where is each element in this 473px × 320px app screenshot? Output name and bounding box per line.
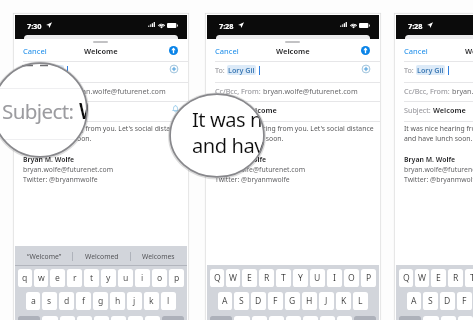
button[interactable]: k [144,292,159,310]
staticText: bryan.wolfe@futurenet.com [71,86,166,96]
button[interactable]: M [337,316,352,320]
button[interactable]: H [302,292,317,310]
staticText: To: [404,65,416,75]
button[interactable]: S [234,292,249,310]
button[interactable]: m [145,316,160,320]
button[interactable]: D [251,292,266,310]
staticText: 7:30 [27,21,42,31]
button[interactable]: v [94,316,109,320]
staticText: S [428,295,433,307]
staticText: a [31,295,36,307]
staticText: A [411,295,417,307]
button[interactable]: p [169,269,184,287]
button[interactable]: C [458,316,473,320]
button[interactable]: U [310,269,325,287]
button[interactable]: “Welcome” [15,246,73,266]
button[interactable]: n [128,316,143,320]
button[interactable]: h [110,292,125,310]
button[interactable]: X [441,316,456,320]
button[interactable]: Shift [18,316,40,320]
button[interactable]: Backspace [162,316,184,320]
button[interactable]: b [111,316,126,320]
button[interactable]: g [93,292,108,310]
button[interactable]: I [327,269,342,287]
button[interactable]: F [457,292,472,310]
button[interactable]: R [448,269,463,287]
button[interactable]: u [118,269,133,287]
button[interactable]: Add recipient [169,64,179,74]
staticText: To: [23,65,35,75]
button[interactable]: q [18,269,32,287]
button[interactable]: x [60,316,75,320]
button[interactable]: j [127,292,142,310]
button[interactable]: Z [234,316,250,320]
button[interactable]: Welcomed [73,246,130,266]
button[interactable]: z [42,316,58,320]
button[interactable]: r [67,269,82,287]
button[interactable]: Notify me [171,104,179,112]
button[interactable]: d [59,292,74,310]
button[interactable]: o [152,269,167,287]
button[interactable]: i [135,269,150,287]
staticText: j [133,295,136,307]
button[interactable]: w [34,269,48,287]
button[interactable]: Send [361,46,370,55]
button[interactable]: s [42,292,57,310]
button[interactable]: A [407,292,421,310]
button[interactable]: S [423,292,438,310]
button[interactable]: c [77,316,92,320]
button[interactable]: A [218,292,232,310]
button[interactable]: C [269,316,284,320]
button[interactable]: Send [169,46,178,55]
staticText: Y [298,272,303,284]
button[interactable]: y [101,269,116,287]
button[interactable]: Y [293,269,308,287]
button[interactable]: E [242,269,257,287]
button[interactable]: F [268,292,283,310]
button[interactable]: Shift [399,316,421,320]
button[interactable]: Backspace [354,316,376,320]
button[interactable]: W [226,269,240,287]
staticText: S [239,295,244,307]
staticText: Welcomed [85,252,119,261]
button[interactable]: L [353,292,368,310]
staticText: q [22,272,28,284]
button[interactable]: Z [423,316,439,320]
button[interactable]: E [431,269,446,287]
button[interactable]: P [361,269,376,287]
button[interactable]: N [320,316,335,320]
button[interactable]: f [76,292,91,310]
button[interactable]: W [415,269,429,287]
button[interactable]: B [303,316,318,320]
button[interactable]: X [252,316,267,320]
button[interactable]: T [465,269,473,287]
button[interactable]: O [344,269,359,287]
button[interactable]: T [276,269,291,287]
button[interactable]: l [161,292,176,310]
button[interactable]: D [440,292,455,310]
staticText: 7:28 [219,21,234,31]
button[interactable]: G [285,292,300,310]
button[interactable]: J [319,292,334,310]
button[interactable]: K [336,292,351,310]
staticText: E [436,272,441,284]
button[interactable]: e [50,269,65,287]
button[interactable]: Cancel [214,45,240,57]
staticText: g [98,295,104,307]
button[interactable]: Q [210,269,224,287]
button[interactable]: Shift [210,316,232,320]
staticText: T [281,272,286,284]
button[interactable]: a [26,292,40,310]
button[interactable]: R [259,269,274,287]
button[interactable]: Cancel [22,45,48,57]
button[interactable]: Add recipient [361,64,371,74]
button[interactable]: t [84,269,99,287]
button[interactable]: Cancel [403,45,429,57]
button[interactable]: V [286,316,301,320]
staticText: W [229,272,237,284]
button[interactable]: Welcomes [130,246,187,266]
button[interactable]: Q [399,269,413,287]
